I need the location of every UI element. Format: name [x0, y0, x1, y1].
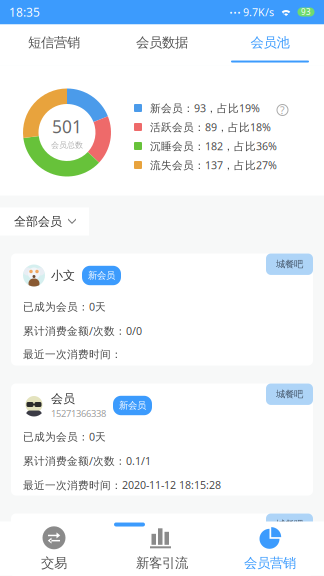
staticText: 最近一次消费时间：2020-11-12 18:15:28	[23, 478, 221, 492]
staticText: 新会员	[119, 400, 146, 411]
button[interactable]: 全部会员	[0, 207, 89, 235]
staticText: 已成为会员：0天	[23, 299, 106, 314]
staticText: 交易	[41, 555, 67, 571]
button[interactable]: 会员数据	[108, 24, 216, 65]
staticText: ···	[229, 2, 241, 22]
staticText: 短信营销	[28, 34, 80, 51]
staticText: 活跃会员：89，占比18%	[150, 120, 271, 134]
staticText: 18:35	[9, 4, 40, 20]
staticText: 新会员	[88, 270, 115, 281]
staticText: 累计消费金额/次数：0.1/1	[23, 454, 151, 468]
staticText: 累计消费金额/次数：0/0	[23, 324, 142, 338]
staticText: 沉睡会员：182，占比36%	[150, 139, 277, 153]
button[interactable]: 交易	[0, 521, 108, 575]
staticText: 新会员：93，占比19%	[150, 101, 260, 115]
button[interactable]: 新客引流	[108, 521, 216, 575]
staticText: 城餐吧	[276, 388, 303, 400]
staticText: 会员池	[250, 34, 289, 51]
staticText: 城餐吧	[276, 518, 303, 530]
button[interactable]: 短信营销	[0, 24, 108, 65]
staticText: 流失会员：137，占比27%	[150, 158, 277, 172]
staticText: 小文	[51, 268, 75, 283]
button[interactable]: 会员营销	[216, 521, 324, 575]
staticText: 新客引流	[136, 555, 188, 571]
staticText: 会员营销	[244, 555, 296, 571]
staticText: 城餐吧	[276, 258, 303, 270]
staticText: 会员总数	[51, 140, 83, 150]
staticText: 会员	[51, 391, 75, 406]
staticText: 已成为会员：0天	[23, 429, 106, 444]
staticText: 最近一次消费时间：	[23, 348, 122, 361]
staticText: 15271366338	[51, 407, 106, 420]
staticText: 全部会员	[14, 214, 62, 229]
button[interactable]: 帮助	[276, 103, 289, 116]
staticText: 93	[301, 7, 311, 17]
button[interactable]: 会员池	[216, 24, 324, 65]
staticText: ?	[280, 103, 285, 117]
staticText: 501	[52, 115, 82, 138]
staticText: 会员数据	[136, 34, 188, 51]
staticText: 9.7K/s	[243, 5, 274, 19]
